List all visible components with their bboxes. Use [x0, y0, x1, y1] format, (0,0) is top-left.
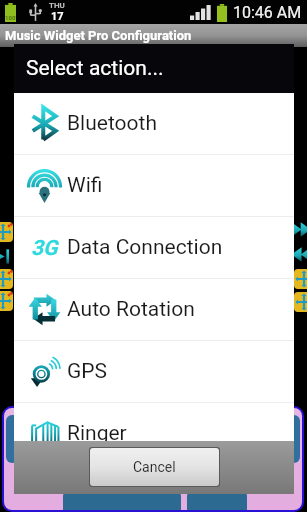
other: USB — [29, 3, 42, 22]
staticText: Ringer — [67, 421, 127, 441]
staticText: Music Widget Pro Configuration — [5, 28, 192, 43]
other: Signal — [190, 5, 212, 20]
button[interactable]: Cancel — [90, 448, 219, 486]
staticText: THU — [49, 1, 65, 10]
staticText: Data Connection — [67, 235, 223, 260]
button[interactable]: Wifi — [14, 155, 294, 216]
button[interactable]: 3G — [14, 217, 294, 278]
staticText: 10:46 AM — [233, 3, 302, 22]
staticText: Auto Rotation — [67, 297, 195, 322]
staticText: 3G — [31, 236, 58, 261]
staticText: Select action... — [26, 56, 164, 81]
button[interactable]: Auto Rotation — [14, 279, 294, 340]
staticText: GPS — [67, 359, 108, 384]
staticText: 17 — [51, 10, 64, 23]
other: Battery — [216, 4, 228, 22]
button[interactable]: GPS — [14, 341, 294, 402]
other: Battery — [5, 3, 16, 22]
staticText: 100% — [5, 14, 16, 21]
button[interactable]: Ringer — [14, 403, 294, 441]
staticText: Cancel — [133, 459, 176, 475]
staticText: Bluetooth — [67, 111, 157, 136]
staticText: each side — [126, 54, 190, 72]
button[interactable]: Bluetooth — [14, 93, 294, 154]
staticText: Wifi — [67, 173, 103, 198]
